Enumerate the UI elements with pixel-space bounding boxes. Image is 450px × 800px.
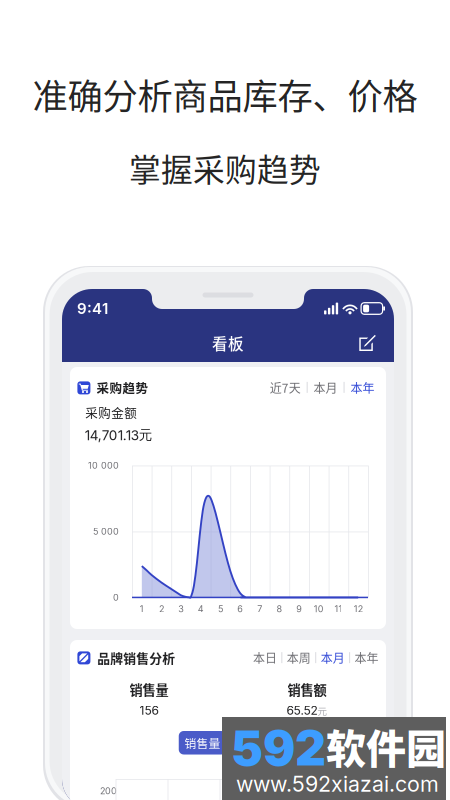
staticText: 11	[334, 604, 342, 614]
staticText: 掌握采购趋势	[129, 145, 321, 191]
button[interactable]: 本月	[314, 379, 338, 396]
staticText: 12	[354, 604, 363, 614]
staticText: 销售额	[287, 680, 326, 699]
staticText: 7	[257, 604, 262, 614]
staticText: 65.52	[286, 703, 317, 718]
staticText: 9:41	[77, 299, 108, 317]
staticText: 采购趋势	[97, 378, 149, 397]
staticText: 本年	[350, 379, 374, 396]
staticText: 3	[178, 604, 184, 614]
staticText: 4	[198, 604, 204, 614]
button[interactable]: 本周	[287, 649, 311, 666]
staticText: 10	[314, 604, 324, 614]
staticText: 156	[139, 703, 158, 718]
button[interactable]: 销售量	[179, 731, 226, 754]
staticText: 采购金额	[85, 403, 137, 422]
staticText: 本日	[253, 649, 277, 666]
staticText: 看板	[212, 332, 244, 354]
staticText: 592	[231, 719, 326, 777]
staticText: 本月	[321, 649, 345, 666]
staticText: 本周	[287, 649, 311, 666]
staticText: 准确分析商品库存、价格	[32, 68, 417, 119]
staticText: 软件园	[326, 717, 446, 775]
staticText: 5	[218, 604, 223, 614]
staticText: 10 000	[88, 460, 119, 471]
staticText: 6	[237, 604, 243, 614]
button[interactable]: 本年	[355, 649, 379, 666]
button[interactable]: 编辑	[355, 331, 380, 355]
staticText: 销售额	[235, 734, 271, 751]
staticText: 5 000	[93, 526, 119, 537]
staticText: 近7天	[270, 379, 301, 396]
staticText: 品牌销售分析	[97, 648, 175, 667]
staticText: 14,701.13元	[85, 426, 153, 443]
button[interactable]: 销售额	[230, 731, 277, 754]
button[interactable]: 本日	[253, 649, 277, 666]
staticText: 本月	[314, 379, 338, 396]
button[interactable]: 近7天	[270, 379, 301, 396]
staticText: 1	[140, 604, 144, 614]
staticText: 9	[296, 604, 302, 614]
staticText: 2	[159, 604, 164, 614]
staticText: 200	[100, 786, 117, 796]
staticText: 8	[276, 604, 282, 614]
staticText: 本年	[355, 649, 379, 666]
staticText: 销售量	[129, 680, 168, 699]
staticText: www.592xiazai.com	[236, 771, 439, 797]
staticText: 0	[113, 592, 119, 603]
staticText: 元	[317, 704, 327, 717]
staticText: 销售量	[184, 734, 220, 751]
button[interactable]: 本月	[321, 649, 345, 666]
button[interactable]: 本年	[350, 379, 374, 396]
